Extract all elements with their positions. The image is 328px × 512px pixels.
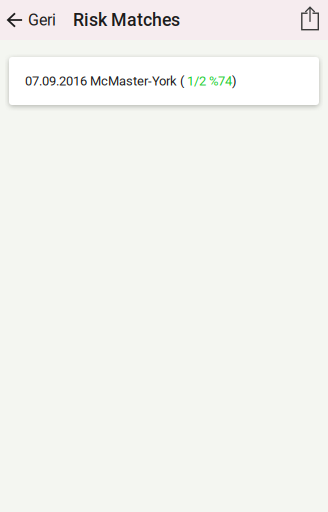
- staticText: Geri: [28, 11, 56, 29]
- button[interactable]: 07.09.2016 McMaster-York (: [9, 57, 319, 105]
- button[interactable]: Share: [292, 0, 328, 40]
- staticText: 07.09.2016 McMaster-York (: [25, 73, 187, 89]
- button[interactable]: Geri: [0, 0, 73, 40]
- staticText: ): [232, 73, 237, 89]
- staticText: 1/2 %74: [187, 73, 232, 89]
- staticText: Risk Matches: [73, 10, 180, 30]
